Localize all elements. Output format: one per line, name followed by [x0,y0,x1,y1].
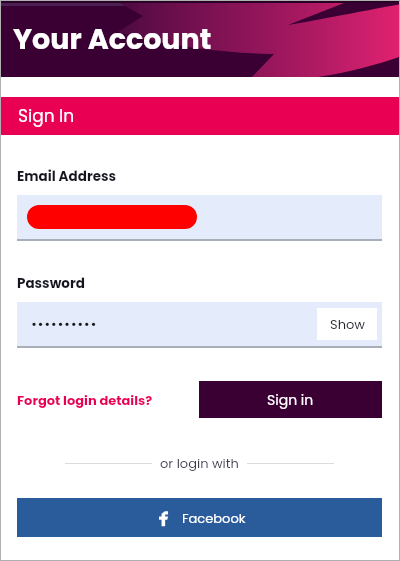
staticText: or login with [160,454,239,472]
staticText: Password [17,274,85,293]
button[interactable] [17,195,382,239]
staticText: Show [330,315,365,333]
staticText: Facebook [182,509,246,527]
staticText: Sign in [267,390,314,410]
staticText: Forgot login details? [17,391,153,409]
button[interactable]: Sign in [199,381,382,418]
button[interactable]: •••••••••• [17,302,382,346]
staticText: Your Account [13,19,212,59]
button[interactable]: Facebook [17,498,382,537]
staticText: Sign In [18,104,75,128]
staticText: •••••••••• [31,315,98,333]
button[interactable]: Forgot login details? [17,391,153,409]
staticText: Email Address [17,167,117,186]
button[interactable]: Show [317,308,377,340]
